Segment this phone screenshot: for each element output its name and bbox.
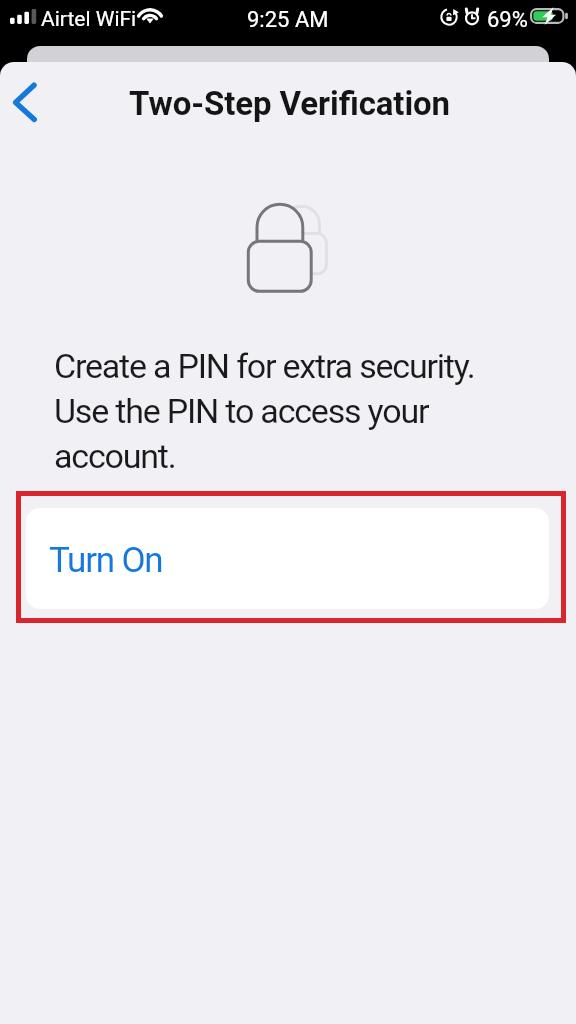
button[interactable]: Turn On bbox=[26, 508, 549, 609]
staticText: 9:25 AM bbox=[247, 7, 329, 33]
button[interactable]: Back bbox=[2, 65, 50, 121]
staticText: 69% bbox=[487, 7, 528, 33]
staticText: Create a PIN for extra security. Use the… bbox=[54, 346, 556, 476]
staticText: Turn On bbox=[49, 540, 163, 581]
staticText: Airtel WiFi bbox=[41, 7, 137, 32]
staticText: Two-Step Verification bbox=[129, 84, 450, 123]
